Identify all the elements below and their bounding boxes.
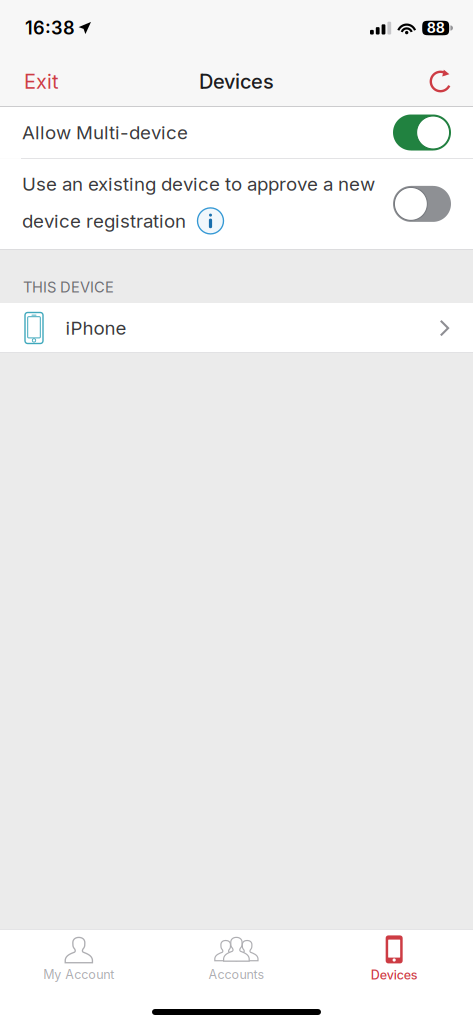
button[interactable]: Devices xyxy=(315,929,473,989)
staticText: Exit xyxy=(24,69,59,94)
button[interactable]: Accounts xyxy=(158,929,315,989)
staticText: 16:38 xyxy=(25,17,75,39)
button[interactable]: Exit xyxy=(0,56,77,107)
staticText: 88 xyxy=(427,19,445,36)
button[interactable]: Refresh xyxy=(412,56,473,107)
staticText: iPhone xyxy=(65,317,126,339)
staticText: My Account xyxy=(43,967,114,982)
staticText: Devices xyxy=(199,69,274,94)
button[interactable]: iPhone xyxy=(0,303,473,353)
staticText: device registration xyxy=(22,210,186,232)
staticText: THIS DEVICE xyxy=(23,278,114,296)
staticText: Accounts xyxy=(208,967,264,982)
staticText: Use an existing device to approve a new xyxy=(22,173,375,195)
button[interactable]: My Account xyxy=(0,929,158,989)
button[interactable]: Allow Multi-device xyxy=(0,107,473,158)
staticText: Allow Multi-device xyxy=(22,121,188,144)
button[interactable]: Use an existing device to approve a new xyxy=(0,159,473,249)
staticText: Devices xyxy=(371,967,418,983)
